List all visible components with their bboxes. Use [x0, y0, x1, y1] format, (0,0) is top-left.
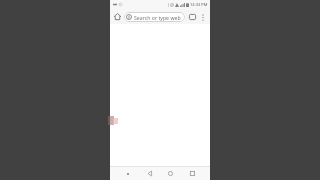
button[interactable]: Menu [123, 169, 132, 178]
button[interactable]: Search or type web url [124, 12, 185, 22]
staticText: Search or type web url [134, 14, 183, 21]
button[interactable]: Back [145, 169, 154, 178]
button[interactable]: Home [112, 11, 123, 22]
button[interactable]: Switch tabs [187, 11, 198, 22]
button[interactable]: Recent apps [188, 169, 197, 178]
staticText: 12:33 PM [190, 2, 208, 7]
button[interactable]: Home [166, 169, 175, 178]
button[interactable]: More options [198, 12, 208, 22]
